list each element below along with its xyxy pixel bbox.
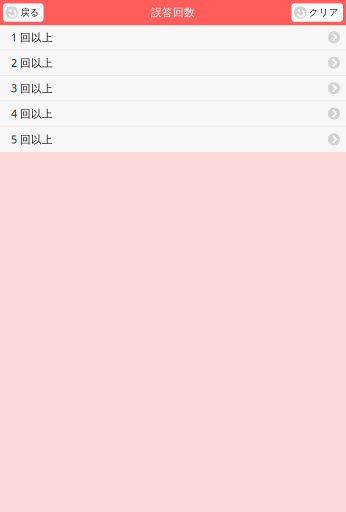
button[interactable]: 3 回以上 <box>0 76 346 101</box>
staticText: 3 回以上 <box>11 81 53 95</box>
staticText: 戻る <box>20 7 39 18</box>
button[interactable]: 4 回以上 <box>0 101 346 127</box>
button[interactable]: 5 回以上 <box>0 127 346 152</box>
button[interactable]: クリア <box>291 3 343 22</box>
staticText: クリア <box>309 7 339 18</box>
button[interactable]: 1 回以上 <box>0 25 346 50</box>
button[interactable]: 戻る <box>3 3 43 22</box>
staticText: 4 回以上 <box>11 106 53 121</box>
staticText: 2 回以上 <box>11 56 53 70</box>
button[interactable]: 2 回以上 <box>0 50 346 76</box>
staticText: 5 回以上 <box>11 132 53 146</box>
staticText: 誤答回数 <box>151 6 195 19</box>
staticText: 1 回以上 <box>11 30 53 44</box>
